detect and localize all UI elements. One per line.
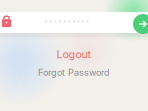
button[interactable]: Forgot Password xyxy=(0,67,148,78)
button[interactable]: Sign in xyxy=(133,14,148,34)
button[interactable]: Logout xyxy=(0,48,148,61)
staticText: Forgot Password xyxy=(38,67,110,78)
staticText: Logout xyxy=(56,48,91,61)
